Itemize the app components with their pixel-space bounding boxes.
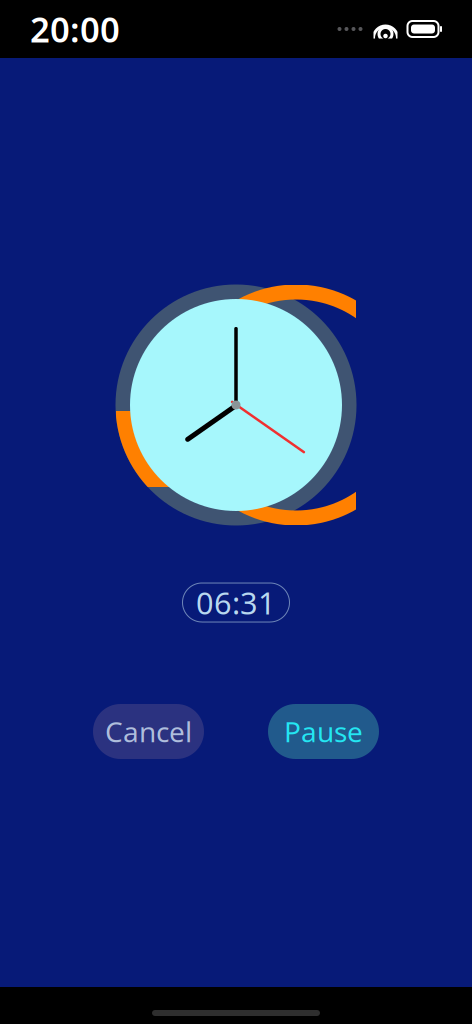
staticText: Pause — [284, 713, 363, 750]
staticText: 06:31 — [196, 582, 276, 623]
staticText: Cancel — [105, 713, 192, 750]
button[interactable]: Cancel — [93, 704, 204, 759]
button[interactable]: Pause — [268, 704, 379, 759]
staticText: 20:00 — [30, 6, 120, 52]
